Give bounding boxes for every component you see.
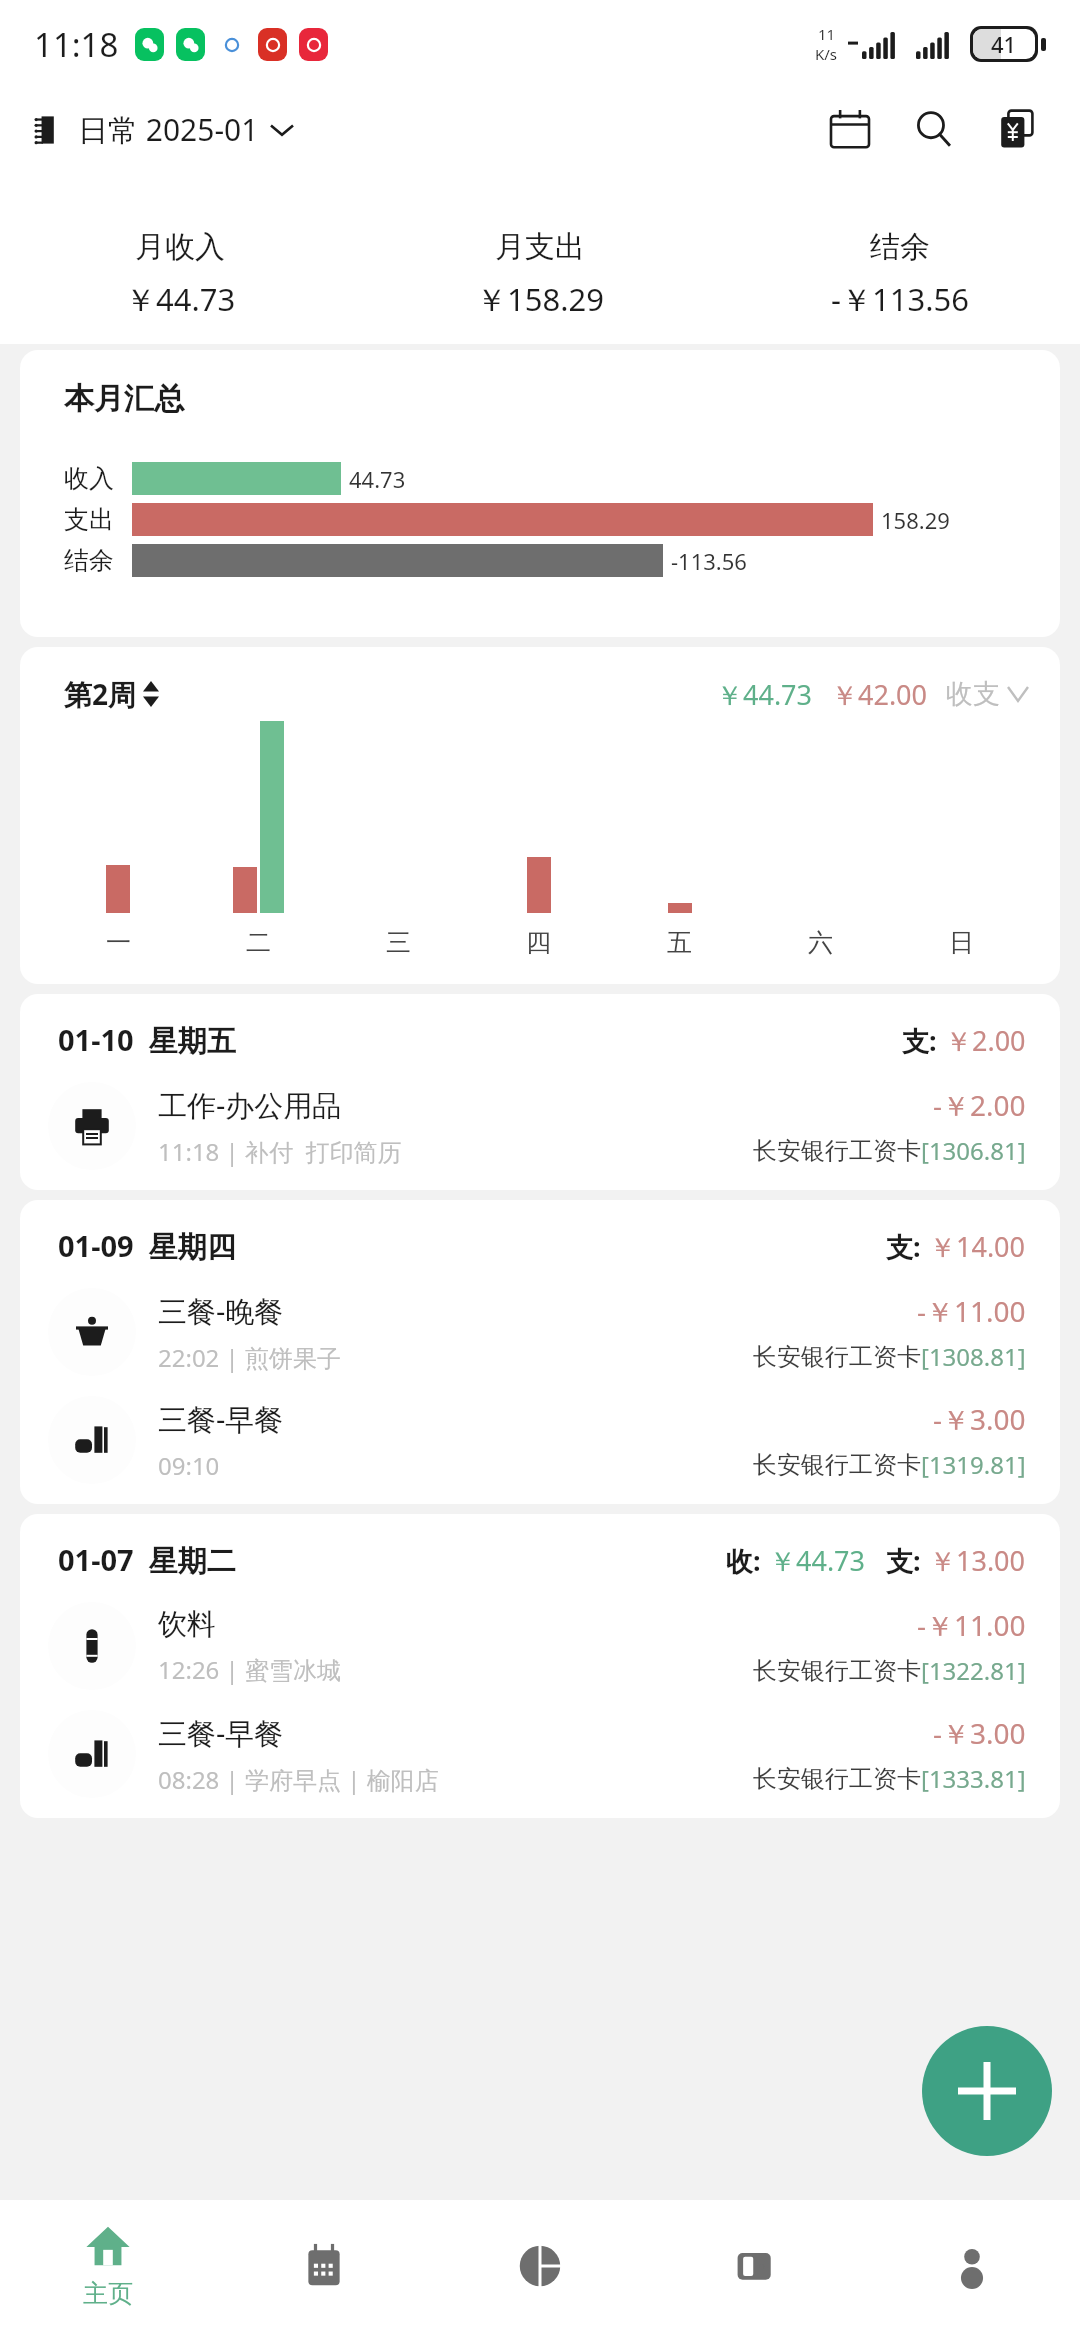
button[interactable]: 月支出 bbox=[360, 228, 720, 320]
button[interactable]: Calendar bbox=[818, 97, 882, 161]
staticText: 长安银行工资卡 bbox=[753, 1342, 921, 1372]
staticText: [1306.81] bbox=[921, 1134, 1026, 1167]
staticText: ￥14.00 bbox=[929, 1228, 1026, 1265]
staticText: 收支 bbox=[946, 677, 1000, 711]
staticText: -￥11.00 bbox=[917, 1292, 1026, 1330]
staticText: 11:18 bbox=[34, 22, 119, 67]
staticText: [1333.81] bbox=[921, 1762, 1026, 1795]
staticText: 第2周 bbox=[64, 675, 137, 713]
staticText: 结余 bbox=[64, 545, 126, 576]
button[interactable]: Tab bbox=[648, 2200, 864, 2331]
staticText: -￥2.00 bbox=[933, 1086, 1026, 1124]
staticText: -￥11.00 bbox=[917, 1606, 1026, 1644]
button[interactable]: Tab bbox=[216, 2200, 432, 2331]
staticText: 长安银行工资卡 bbox=[753, 1450, 921, 1480]
staticText: 收入 bbox=[64, 463, 126, 494]
button[interactable]: Bills bbox=[986, 97, 1050, 161]
staticText: 01-09 星期四 bbox=[58, 1226, 236, 1266]
staticText: 支: bbox=[886, 1542, 921, 1579]
staticText: K/s bbox=[815, 44, 838, 64]
button[interactable]: Tab bbox=[432, 2200, 648, 2331]
button[interactable]: 01-09 星期四 bbox=[20, 1200, 1060, 1278]
staticText: 12:26 | 蜜雪冰城 bbox=[158, 1653, 342, 1686]
staticText: -￥3.00 bbox=[933, 1714, 1026, 1752]
staticText: [1322.81] bbox=[921, 1654, 1026, 1687]
staticText: 08:28 | 学府早点 | 榆阳店 bbox=[158, 1763, 439, 1796]
button[interactable]: 三餐-早餐 bbox=[20, 1700, 1060, 1808]
button[interactable]: 01-10 星期五 bbox=[20, 994, 1060, 1072]
button[interactable]: Tab bbox=[864, 2200, 1080, 2331]
staticText: 158.29 bbox=[881, 505, 950, 535]
staticText: 支: bbox=[902, 1022, 937, 1059]
staticText: 09:10 bbox=[158, 1449, 220, 1482]
staticText: 01-10 星期五 bbox=[58, 1020, 236, 1060]
staticText: 六 bbox=[808, 927, 833, 958]
button[interactable]: 本月汇总 bbox=[20, 350, 1060, 637]
staticText: 主页 bbox=[83, 2278, 133, 2309]
staticText: 日 bbox=[949, 927, 974, 958]
staticText: 支: bbox=[886, 1228, 921, 1265]
staticText: ￥2.00 bbox=[945, 1022, 1026, 1059]
staticText: 三餐-早餐 bbox=[158, 1399, 284, 1439]
staticText: 收: bbox=[726, 1542, 761, 1579]
button[interactable]: 收支 bbox=[946, 677, 1028, 711]
staticText: -￥113.56 bbox=[831, 278, 969, 320]
staticText: 饮料 bbox=[158, 1606, 216, 1643]
staticText: [1319.81] bbox=[921, 1448, 1026, 1481]
staticText: 三餐-早餐 bbox=[158, 1713, 284, 1753]
staticText: [1308.81] bbox=[921, 1340, 1026, 1373]
staticText: 44.73 bbox=[349, 464, 406, 494]
staticText: 工作-办公用品 bbox=[158, 1085, 342, 1125]
button[interactable]: 三餐-早餐 bbox=[20, 1386, 1060, 1494]
staticText: ￥44.73 bbox=[125, 278, 236, 320]
button[interactable]: 结余 bbox=[720, 228, 1080, 320]
button[interactable]: 工作-办公用品 bbox=[20, 1072, 1060, 1180]
staticText: 五 bbox=[667, 927, 692, 958]
staticText: 41 bbox=[991, 29, 1017, 59]
staticText: ￥44.73 bbox=[769, 1542, 866, 1579]
staticText: 长安银行工资卡 bbox=[753, 1764, 921, 1794]
button[interactable]: 第2周 bbox=[64, 675, 159, 713]
button[interactable]: 主页 bbox=[0, 2200, 216, 2331]
staticText: ￥13.00 bbox=[929, 1542, 1026, 1579]
staticText: 支出 bbox=[64, 504, 126, 535]
button[interactable]: 月收入 bbox=[0, 228, 360, 320]
staticText: 日常 2025-01 bbox=[78, 109, 259, 150]
button[interactable]: Add record bbox=[922, 2026, 1052, 2156]
button[interactable]: 饮料 bbox=[20, 1592, 1060, 1700]
staticText: 月收入 bbox=[135, 228, 225, 266]
staticText: 长安银行工资卡 bbox=[753, 1136, 921, 1166]
staticText: 二 bbox=[246, 927, 271, 958]
button[interactable]: Search bbox=[902, 97, 966, 161]
staticText: 11 bbox=[818, 24, 836, 44]
staticText: 一 bbox=[106, 927, 131, 958]
staticText: ￥158.29 bbox=[476, 278, 604, 320]
staticText: -113.56 bbox=[671, 546, 747, 576]
button[interactable]: 日常 2025-01 bbox=[30, 103, 293, 156]
button[interactable]: 三餐-晚餐 bbox=[20, 1278, 1060, 1386]
staticText: ￥42.00 bbox=[831, 676, 928, 713]
staticText: 本月汇总 bbox=[64, 380, 184, 418]
staticText: 22:02 | 煎饼果子 bbox=[158, 1341, 342, 1374]
staticText: 三餐-晚餐 bbox=[158, 1291, 284, 1331]
staticText: 月支出 bbox=[495, 228, 585, 266]
button[interactable]: 01-07 星期二 bbox=[20, 1514, 1060, 1592]
staticText: 结余 bbox=[870, 228, 930, 266]
staticText: -￥3.00 bbox=[933, 1400, 1026, 1438]
staticText: ￥44.73 bbox=[716, 676, 813, 713]
staticText: 四 bbox=[526, 927, 551, 958]
staticText: 11:18 | 补付 打印简历 bbox=[158, 1135, 402, 1168]
staticText: 长安银行工资卡 bbox=[753, 1656, 921, 1686]
staticText: 01-07 星期二 bbox=[58, 1540, 236, 1580]
staticText: 三 bbox=[386, 927, 411, 958]
